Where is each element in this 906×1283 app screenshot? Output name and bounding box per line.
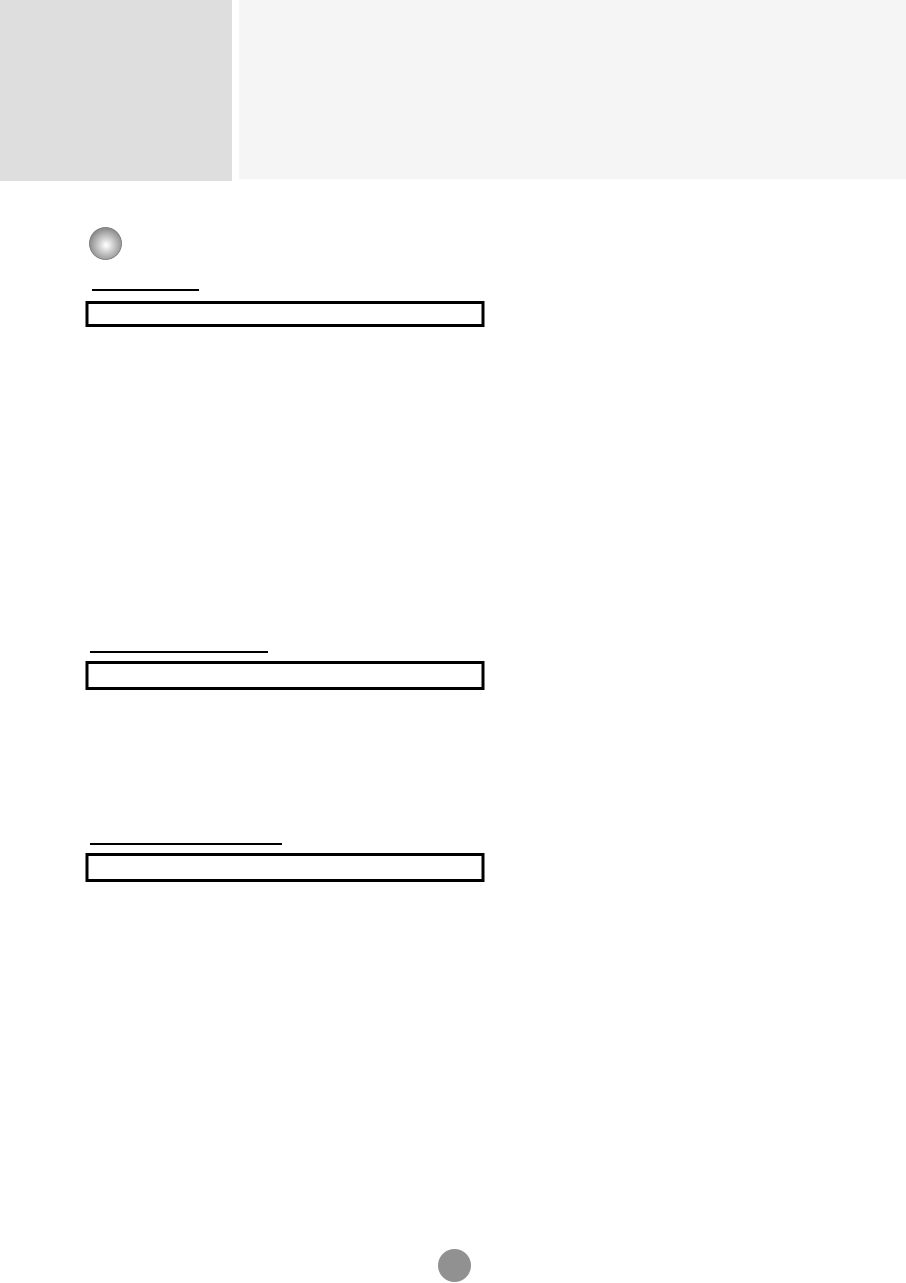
button[interactable]: Field 1: [87, 302, 483, 325]
button[interactable]: Field 2: [87, 662, 483, 688]
button[interactable]: Profile: [83, 221, 127, 265]
button[interactable]: Field 3: [87, 854, 483, 880]
button[interactable]: More: [438, 1249, 471, 1282]
